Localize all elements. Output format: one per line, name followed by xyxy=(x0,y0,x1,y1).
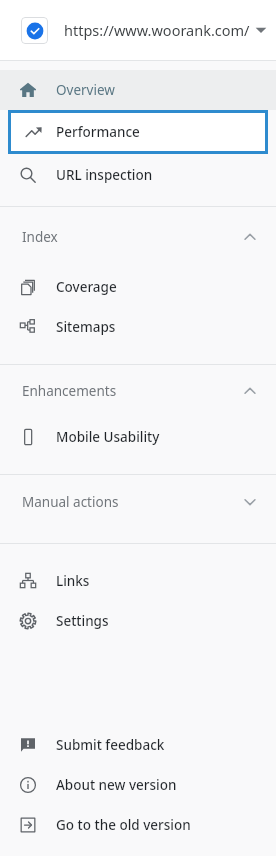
staticText: Enhancements xyxy=(22,382,117,400)
button[interactable]: URL inspection xyxy=(0,154,276,196)
button[interactable]: Performance xyxy=(11,113,265,151)
button[interactable]: Links xyxy=(0,561,276,601)
staticText: Links xyxy=(56,572,90,590)
staticText: Overview xyxy=(56,81,115,99)
staticText: Sitemaps xyxy=(56,318,116,336)
staticText: https://www.woorank.com/ xyxy=(64,20,250,40)
button[interactable]: https://www.woorank.com/ xyxy=(0,0,276,60)
button[interactable]: Coverage xyxy=(0,267,276,307)
staticText: Coverage xyxy=(56,278,117,296)
button[interactable]: Sitemaps xyxy=(0,307,276,347)
staticText: Settings xyxy=(56,612,109,630)
button[interactable]: Overview xyxy=(0,70,276,110)
staticText: Go to the old version xyxy=(56,816,191,834)
other: Collapse Index xyxy=(239,226,261,248)
button[interactable]: Settings xyxy=(0,601,276,641)
button[interactable]: Manual actions xyxy=(0,475,276,529)
staticText: About new version xyxy=(56,776,177,794)
staticText: URL inspection xyxy=(56,166,153,184)
button[interactable]: Mobile Usability xyxy=(0,417,276,457)
button[interactable]: Go to the old version xyxy=(0,805,276,845)
staticText: Manual actions xyxy=(22,493,119,511)
other: Collapse Enhancements xyxy=(239,380,261,402)
button[interactable]: About new version xyxy=(0,765,276,805)
staticText: Index xyxy=(22,228,58,246)
staticText: Mobile Usability xyxy=(56,428,160,446)
button[interactable]: Index xyxy=(0,207,276,267)
button[interactable]: Enhancements xyxy=(0,365,276,417)
button[interactable]: Submit feedback xyxy=(0,725,276,765)
other: Expand Manual actions xyxy=(239,491,261,513)
staticText: Performance xyxy=(56,123,140,141)
staticText: Submit feedback xyxy=(56,736,165,754)
other: Select property xyxy=(250,19,272,41)
